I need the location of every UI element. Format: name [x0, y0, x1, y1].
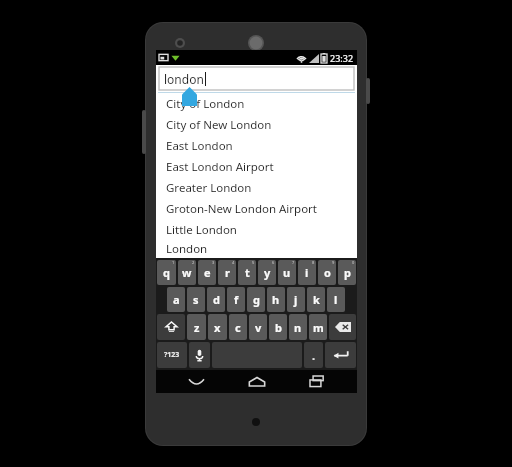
button[interactable]: b [269, 314, 287, 340]
staticText: p [344, 265, 351, 280]
staticText: 23:32 [330, 52, 354, 64]
other: Voice input [195, 349, 204, 362]
staticText: c [235, 320, 241, 335]
staticText: l [334, 292, 338, 307]
button[interactable]: v [249, 314, 267, 340]
button[interactable]: e [198, 260, 216, 285]
button[interactable]: City of London [158, 93, 355, 114]
button[interactable]: East London [158, 135, 355, 156]
staticText: o [324, 265, 331, 280]
staticText: z [194, 320, 200, 335]
staticText: r [225, 265, 230, 280]
button[interactable]: c [229, 314, 247, 340]
staticText: City of London [166, 96, 245, 112]
button[interactable]: London [158, 240, 355, 258]
button[interactable]: Enter [325, 342, 356, 368]
staticText: 3 [212, 260, 215, 265]
staticText: 8 [312, 260, 315, 265]
button[interactable]: l [327, 287, 345, 312]
staticText: t [245, 265, 250, 280]
staticText: Groton-New London Airport [166, 201, 318, 217]
button[interactable]: Back [176, 370, 216, 393]
button[interactable]: p [338, 260, 356, 285]
button[interactable]: r [218, 260, 236, 285]
button[interactable]: n [289, 314, 307, 340]
staticText: 7 [292, 260, 295, 265]
staticText: j [294, 292, 298, 307]
button[interactable]: Shift [157, 314, 185, 340]
staticText: London [166, 241, 208, 257]
button[interactable]: o [318, 260, 336, 285]
button[interactable]: ?123 [157, 342, 187, 368]
button[interactable]: City of New London [158, 114, 355, 135]
button[interactable]: Greater London [158, 177, 355, 198]
button[interactable]: j [287, 287, 305, 312]
button[interactable]: h [267, 287, 285, 312]
button[interactable]: f [227, 287, 245, 312]
staticText: s [193, 292, 199, 307]
button[interactable]: z [187, 314, 206, 340]
button[interactable]: Backspace [329, 314, 356, 340]
staticText: w [182, 265, 192, 280]
staticText: . [312, 348, 316, 363]
staticText: v [255, 320, 262, 335]
staticText: 4 [232, 260, 235, 265]
button[interactable]: Voice input [189, 342, 210, 368]
staticText: East London Airport [166, 159, 274, 175]
button[interactable]: Groton-New London Airport [158, 198, 355, 219]
button[interactable]: g [247, 287, 265, 312]
staticText: n [294, 320, 302, 335]
button[interactable]: a [167, 287, 185, 312]
button[interactable]: m [309, 314, 327, 340]
button[interactable]: u [278, 260, 296, 285]
button[interactable]: Home [237, 370, 277, 393]
button[interactable]: s [187, 287, 205, 312]
staticText: Little London [166, 222, 237, 238]
button[interactable]: london [159, 67, 354, 90]
staticText: 6 [272, 260, 275, 265]
button[interactable]: q [157, 260, 176, 285]
staticText: 1 [172, 260, 175, 265]
staticText: x [214, 320, 221, 335]
staticText: q [163, 265, 170, 280]
button[interactable]: k [307, 287, 325, 312]
other: Backspace [335, 322, 351, 332]
button[interactable]: . [304, 342, 323, 368]
staticText: 5 [252, 260, 255, 265]
button[interactable]: t [238, 260, 256, 285]
staticText: 0 [352, 260, 355, 265]
staticText: a [173, 292, 180, 307]
staticText: East London [166, 138, 233, 154]
staticText: ?123 [164, 350, 180, 360]
staticText: Greater London [166, 180, 252, 196]
staticText: u [283, 265, 291, 280]
staticText: h [272, 292, 280, 307]
button[interactable]: East London Airport [158, 156, 355, 177]
staticText: i [305, 265, 309, 280]
staticText: g [253, 292, 260, 307]
other: Enter [333, 350, 349, 361]
staticText: y [264, 265, 271, 280]
staticText: City of New London [166, 117, 272, 133]
staticText: 9 [332, 260, 335, 265]
staticText: k [313, 292, 320, 307]
staticText: london [164, 71, 204, 87]
button[interactable]: Little London [158, 219, 355, 240]
staticText: f [234, 292, 239, 307]
button[interactable]: x [208, 314, 227, 340]
staticText: m [313, 320, 324, 335]
button[interactable]: y [258, 260, 276, 285]
staticText: d [213, 292, 220, 307]
staticText: b [275, 320, 282, 335]
button[interactable]: Recent apps [297, 370, 337, 393]
button[interactable]: i [298, 260, 316, 285]
staticText: 2 [192, 260, 195, 265]
other: Shift [165, 321, 178, 333]
staticText: e [204, 265, 211, 280]
button[interactable]: d [207, 287, 225, 312]
button[interactable]: w [178, 260, 196, 285]
